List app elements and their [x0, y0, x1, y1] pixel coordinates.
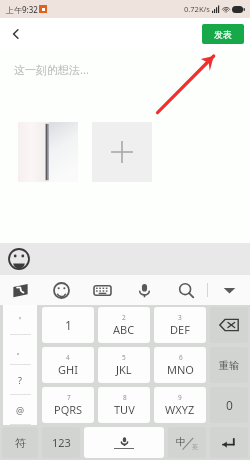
button[interactable]: Keyboard layout	[82, 275, 123, 305]
staticText: 中	[176, 435, 186, 448]
button[interactable]: 0	[210, 387, 248, 423]
staticText: 发表	[214, 29, 232, 40]
button[interactable]: 3	[154, 307, 206, 343]
button[interactable]: 。	[3, 335, 37, 365]
staticText: 6	[179, 353, 183, 362]
staticText: 4	[66, 353, 70, 362]
staticText: 5	[122, 353, 126, 362]
staticText: '	[19, 314, 22, 326]
staticText: WXYZ	[165, 402, 195, 417]
button[interactable]: Add photo	[92, 122, 152, 182]
staticText: 8	[123, 393, 127, 402]
staticText: 0	[226, 397, 233, 413]
button[interactable]: Search	[165, 275, 207, 305]
button[interactable]: 123	[42, 427, 80, 458]
button[interactable]: 1	[42, 307, 94, 343]
staticText: JKL	[116, 362, 132, 377]
staticText: 符	[15, 436, 26, 450]
staticText: 。	[16, 345, 25, 356]
staticText: 这一刻的想法...	[14, 62, 89, 77]
button[interactable]: 7	[42, 387, 94, 423]
staticText: MNO	[167, 362, 194, 377]
staticText: DEF	[170, 322, 190, 337]
button[interactable]: 8	[98, 387, 150, 423]
staticText: 3	[178, 313, 182, 322]
staticText: 123	[52, 435, 71, 450]
staticText: GHI	[58, 362, 78, 377]
button[interactable]: 6	[154, 347, 206, 383]
button[interactable]: 发表	[202, 24, 244, 44]
button[interactable]: 2	[98, 307, 150, 343]
staticText: 0.72K/s	[184, 4, 210, 14]
staticText: 英	[192, 443, 198, 451]
staticText: @	[16, 404, 25, 416]
button[interactable]: ?	[3, 365, 37, 395]
staticText: 2	[122, 313, 126, 322]
button[interactable]: 4	[42, 347, 94, 383]
staticText: 9	[178, 393, 182, 402]
button[interactable]: Emoticons	[41, 275, 82, 305]
staticText: 上午9:32	[6, 4, 38, 15]
button[interactable]: '	[3, 305, 37, 335]
staticText: TUV	[114, 402, 135, 417]
staticText: 1	[65, 317, 72, 333]
button[interactable]: Voice input	[123, 275, 165, 305]
button[interactable]: 重输	[210, 347, 248, 383]
staticText: ABC	[113, 322, 135, 337]
button[interactable]: Sogou input	[0, 275, 41, 305]
button[interactable]: 符	[2, 427, 38, 458]
button[interactable]: 5	[98, 347, 150, 383]
staticText: ?	[18, 374, 22, 386]
button[interactable]: 中	[168, 427, 206, 458]
staticText: 重输	[219, 359, 239, 372]
button[interactable]: Space / voice	[84, 427, 164, 458]
button[interactable]: Hide keyboard	[208, 275, 250, 305]
button[interactable]: Emoji	[8, 248, 30, 270]
button[interactable]: Photo	[18, 122, 78, 182]
button[interactable]: 9	[154, 387, 206, 423]
button[interactable]: Back	[2, 20, 30, 48]
button[interactable]: Backspace	[210, 307, 248, 343]
button[interactable]: Enter	[210, 427, 248, 458]
staticText: PQRS	[54, 402, 83, 417]
staticText: 7	[67, 393, 71, 402]
button[interactable]: @	[3, 395, 37, 425]
